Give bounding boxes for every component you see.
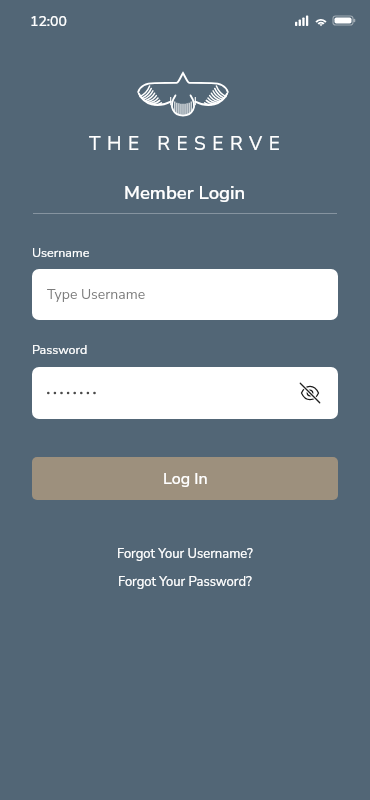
button[interactable]: Type Username (32, 269, 338, 320)
staticText: Password (32, 341, 88, 358)
button[interactable]: Show password (32, 367, 338, 419)
staticText: Log In (163, 468, 208, 490)
button[interactable]: Show password (294, 377, 326, 409)
staticText: Type Username (47, 285, 146, 304)
staticText: Member Login (124, 180, 246, 205)
staticText: Username (32, 244, 90, 261)
button[interactable]: Log In (32, 457, 338, 500)
button[interactable]: Forgot Your Username? (111, 542, 259, 566)
staticText: 12:00 (30, 12, 67, 31)
staticText: THE RESERVE (89, 131, 287, 157)
button[interactable]: Forgot Your Password? (112, 570, 258, 594)
